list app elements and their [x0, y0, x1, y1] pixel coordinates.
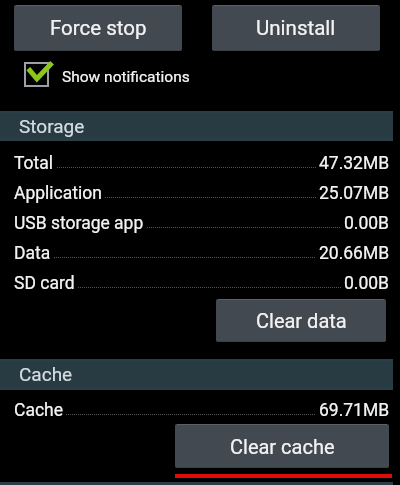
staticText: SD card — [14, 273, 75, 294]
button[interactable]: Uninstall — [212, 5, 380, 51]
button[interactable]: Show notifications checkbox — [18, 58, 200, 92]
button[interactable]: USB storage app — [0, 210, 400, 240]
staticText: USB storage app — [14, 213, 144, 234]
staticText: Clear cache — [230, 435, 335, 458]
staticText: Uninstall — [256, 16, 336, 40]
staticText: 20.66MB — [319, 243, 390, 264]
staticText: 25.07MB — [319, 183, 390, 204]
button[interactable]: Cache — [0, 397, 400, 427]
staticText: Application — [14, 183, 102, 204]
staticText: Storage — [19, 115, 85, 137]
staticText: Force stop — [50, 16, 147, 40]
button[interactable]: Force stop — [14, 5, 182, 51]
staticText: Data — [14, 243, 51, 264]
staticText: 47.32MB — [319, 153, 390, 174]
staticText: Show notifications — [62, 68, 190, 86]
staticText: Clear data — [256, 309, 347, 332]
staticText: 0.00B — [344, 273, 390, 294]
staticText: Cache — [19, 363, 73, 385]
button[interactable]: Clear data — [216, 299, 386, 342]
staticText: 69.71MB — [319, 400, 390, 421]
button[interactable]: SD card — [0, 270, 400, 300]
other: Show notifications checkbox — [24, 60, 54, 90]
staticText: 0.00B — [344, 213, 390, 234]
button[interactable]: Application — [0, 180, 400, 210]
button[interactable]: Clear cache — [175, 424, 389, 468]
button[interactable]: Total — [0, 150, 400, 180]
button[interactable]: Data — [0, 240, 400, 270]
staticText: Total — [14, 153, 54, 174]
staticText: Cache — [14, 400, 63, 421]
